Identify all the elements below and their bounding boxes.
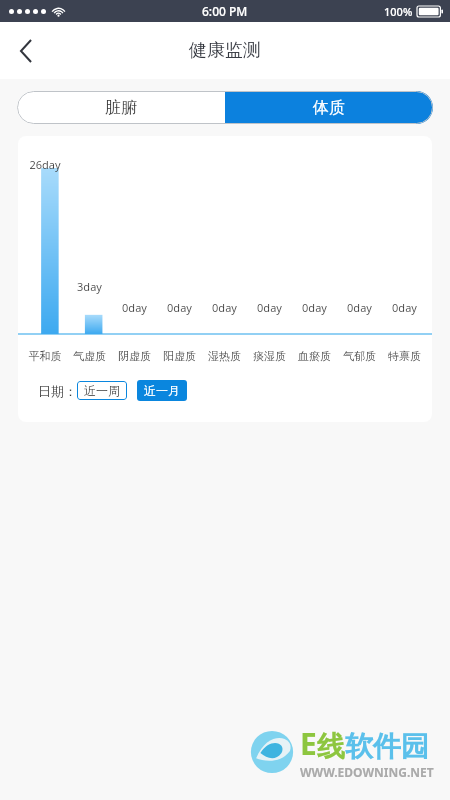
button[interactable]: Back xyxy=(0,22,52,79)
staticText: 特禀质 xyxy=(382,349,427,363)
staticText: E xyxy=(300,723,317,764)
button[interactable]: 体质 xyxy=(225,91,433,124)
staticText: 血瘀质 xyxy=(292,349,337,363)
staticText: 湿热质 xyxy=(202,349,247,363)
staticText: 健康监测 xyxy=(189,39,261,62)
staticText: 0day xyxy=(247,300,292,315)
staticText: 近一周 xyxy=(84,383,120,398)
staticText: 6:00 PM xyxy=(202,3,248,19)
button[interactable]: 近一周 xyxy=(77,381,127,400)
staticText: 0day xyxy=(292,300,337,315)
staticText: 0day xyxy=(382,300,427,315)
staticText: 0day xyxy=(112,300,157,315)
staticText: 体质 xyxy=(313,98,345,118)
staticText: 软件园 xyxy=(345,729,429,764)
staticText: 26day xyxy=(23,157,67,172)
staticText: WWW.EDOWNING.NET xyxy=(300,764,434,780)
button[interactable]: 近一月 xyxy=(137,380,187,401)
staticText: 日期： xyxy=(38,383,77,399)
staticText: 脏腑 xyxy=(105,98,137,118)
staticText: 0day xyxy=(202,300,247,315)
staticText: 气郁质 xyxy=(337,349,382,363)
staticText: 0day xyxy=(157,300,202,315)
staticText: 气虚质 xyxy=(67,349,112,363)
staticText: 3day xyxy=(67,279,112,294)
staticText: 100% xyxy=(384,4,413,19)
staticText: 0day xyxy=(337,300,382,315)
staticText: 线 xyxy=(317,729,345,764)
staticText: 近一月 xyxy=(144,383,180,398)
button[interactable]: 脏腑 xyxy=(17,91,225,124)
staticText: 阴虚质 xyxy=(112,349,157,363)
staticText: 平和质 xyxy=(23,349,67,363)
staticText: 阳虚质 xyxy=(157,349,202,363)
staticText: 痰湿质 xyxy=(247,349,292,363)
